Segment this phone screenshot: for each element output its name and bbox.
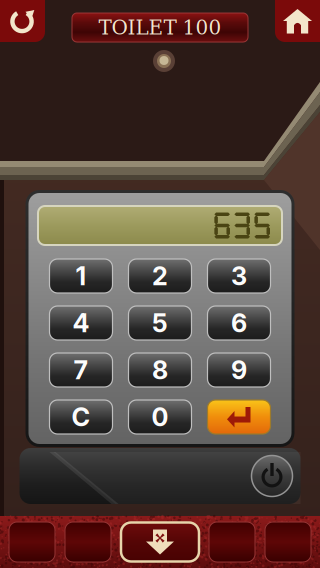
button[interactable]: Restart level — [0, 0, 45, 42]
staticText: 1 — [75, 261, 86, 291]
button[interactable]: Empty inventory slot — [65, 522, 111, 562]
button[interactable]: 6 — [207, 306, 270, 340]
staticText: 8 — [152, 355, 168, 385]
button[interactable]: Home — [275, 0, 320, 42]
staticText: 5 — [152, 308, 168, 338]
staticText: 9 — [231, 355, 247, 385]
staticText: 3 — [231, 261, 247, 291]
button[interactable]: Power — [251, 455, 292, 496]
staticText: 4 — [72, 308, 89, 338]
button[interactable]: Empty inventory slot — [209, 522, 255, 562]
button[interactable]: C — [49, 400, 112, 434]
staticText: 7 — [73, 355, 88, 385]
button[interactable]: 0 — [128, 400, 191, 434]
button[interactable]: Empty inventory slot — [9, 522, 55, 562]
staticText: 0 — [151, 402, 168, 432]
staticText: 6 — [231, 308, 247, 338]
button[interactable]: Enter code — [207, 400, 270, 434]
button[interactable]: 4 — [49, 306, 112, 340]
staticText: 2 — [152, 261, 168, 291]
button[interactable]: Empty inventory slot — [265, 522, 311, 562]
button[interactable]: 5 — [128, 306, 191, 340]
button[interactable]: TOILET 100 — [72, 13, 248, 42]
button[interactable]: 8 — [128, 353, 191, 387]
button[interactable]: 2 — [128, 259, 191, 293]
button[interactable]: 1 — [49, 259, 112, 293]
staticText: TOILET 100 — [98, 16, 221, 39]
button[interactable]: 7 — [49, 353, 112, 387]
button[interactable]: Hide inventory — [121, 522, 199, 561]
button[interactable]: 9 — [207, 353, 270, 387]
button[interactable]: 3 — [207, 259, 270, 293]
staticText: C — [71, 402, 90, 432]
